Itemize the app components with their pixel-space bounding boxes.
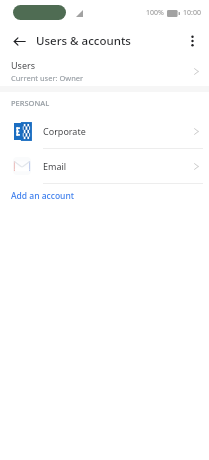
staticText: Current user: Owner (11, 73, 84, 83)
staticText: PERSONAL (11, 98, 50, 108)
staticText: Email (43, 160, 193, 172)
staticText: 100% (146, 8, 164, 18)
button[interactable]: Email (0, 149, 209, 183)
button[interactable]: Corporate (0, 114, 209, 148)
button[interactable]: More options (181, 30, 203, 52)
staticText: 10:00 (183, 8, 201, 18)
button[interactable]: Add an account (0, 184, 209, 208)
staticText: Users & accounts (36, 33, 131, 49)
button[interactable]: Back (8, 30, 30, 52)
staticText: Add an account (11, 190, 75, 202)
button[interactable]: Users (0, 56, 209, 86)
staticText: Users (11, 59, 35, 71)
staticText: Corporate (43, 125, 193, 137)
